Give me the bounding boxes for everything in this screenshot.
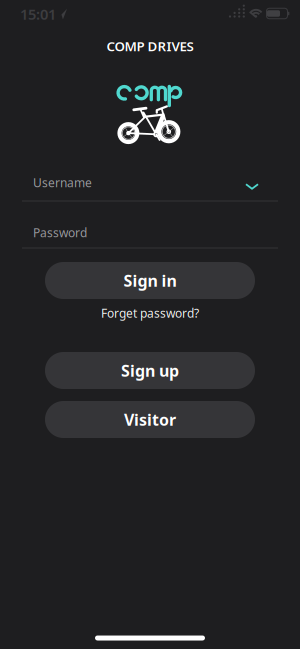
button[interactable]: Sign up [45, 352, 255, 389]
button[interactable]: Forget password? [101, 305, 199, 321]
staticText: Visitor [124, 409, 176, 430]
button[interactable]: Password [22, 217, 278, 248]
staticText: Sign in [123, 270, 176, 291]
button[interactable]: Sign in [45, 262, 255, 299]
button[interactable]: Visitor [45, 401, 255, 438]
staticText: COMP DRIVES [106, 37, 193, 55]
button[interactable]: Username [22, 164, 278, 201]
staticText: Sign up [121, 360, 179, 381]
staticText: 15:01 [20, 4, 56, 24]
staticText: Password [33, 224, 87, 240]
staticText: Forget password? [101, 305, 199, 321]
staticText: Username [33, 174, 92, 190]
